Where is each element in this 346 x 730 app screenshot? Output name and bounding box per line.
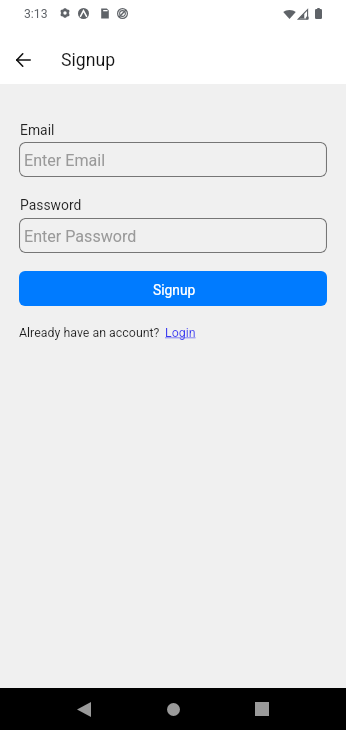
button[interactable]: Enter Password (19, 218, 327, 253)
button[interactable]: Login (165, 325, 196, 340)
staticText: Password (20, 197, 82, 213)
button[interactable]: Home (152, 688, 194, 730)
button[interactable]: Back (7, 44, 39, 76)
staticText: Signup (61, 50, 116, 71)
staticText: Signup (153, 282, 196, 298)
staticText: Already have an account? (19, 325, 163, 340)
button[interactable]: Recents (241, 688, 283, 730)
button[interactable]: Enter Email (19, 142, 327, 177)
staticText: Enter Password (24, 227, 137, 246)
staticText: 3:13 (24, 7, 48, 21)
staticText: Email (20, 122, 55, 138)
button[interactable]: Signup (19, 271, 327, 306)
staticText: Enter Email (24, 151, 106, 170)
button[interactable]: Back (63, 688, 105, 730)
